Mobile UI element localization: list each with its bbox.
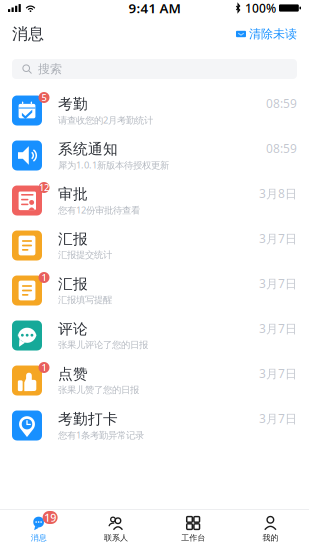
staticText: 08:59 xyxy=(266,95,297,111)
button[interactable]: 1 xyxy=(0,358,309,403)
button[interactable]: 12 xyxy=(0,178,309,223)
staticText: 9:41 AM xyxy=(128,0,180,17)
staticText: 请查收您的2月考勤统计 xyxy=(58,114,153,126)
staticText: 张果儿赞了您的日报 xyxy=(58,384,139,396)
button[interactable]: 5 xyxy=(0,88,309,133)
button[interactable]: 评论 xyxy=(0,313,309,358)
staticText: 汇报提交统计 xyxy=(58,249,112,261)
staticText: 3月7日 xyxy=(259,365,297,381)
staticText: 汇报 xyxy=(58,230,88,248)
staticText: 我的 xyxy=(262,533,278,543)
button[interactable]: 工作台 xyxy=(154,510,232,550)
staticText: 100% xyxy=(245,0,276,16)
button[interactable]: 汇报 xyxy=(0,223,309,268)
staticText: 消息 xyxy=(31,533,47,543)
staticText: 3月8日 xyxy=(259,185,297,201)
staticText: 工作台 xyxy=(181,533,205,543)
staticText: 3月7日 xyxy=(259,275,297,291)
button[interactable]: 联系人 xyxy=(77,510,154,550)
button[interactable]: 19 xyxy=(0,510,77,550)
staticText: 评论 xyxy=(58,320,88,338)
staticText: 审批 xyxy=(58,185,88,203)
staticText: 犀为1.0.1新版本待授权更新 xyxy=(58,159,169,171)
staticText: 考勤打卡 xyxy=(58,410,118,428)
staticText: 考勤 xyxy=(58,95,88,113)
button[interactable]: 1 xyxy=(0,268,309,313)
staticText: 联系人 xyxy=(104,533,128,543)
staticText: 点赞 xyxy=(58,365,88,383)
staticText: 1 xyxy=(41,361,46,374)
staticText: 汇报 xyxy=(58,275,88,293)
button[interactable]: 考勤打卡 xyxy=(0,403,309,448)
staticText: 1 xyxy=(41,271,46,284)
button[interactable]: 清除未读 xyxy=(236,27,297,41)
staticText: 3月7日 xyxy=(259,230,297,246)
staticText: 3月7日 xyxy=(259,410,297,426)
staticText: 消息 xyxy=(12,24,44,44)
staticText: 12 xyxy=(39,181,49,194)
staticText: 5 xyxy=(41,91,46,104)
staticText: 3月7日 xyxy=(259,320,297,336)
button[interactable]: 系统通知 xyxy=(0,133,309,178)
staticText: 您有1条考勤异常记录 xyxy=(58,429,144,441)
staticText: 汇报填写提醒 xyxy=(58,294,112,306)
staticText: 19 xyxy=(44,510,56,525)
staticText: 系统通知 xyxy=(58,140,118,158)
staticText: 08:59 xyxy=(266,140,297,156)
staticText: 张果儿评论了您的日报 xyxy=(58,339,148,351)
staticText: 清除未读 xyxy=(249,27,297,41)
staticText: 搜索 xyxy=(38,62,62,76)
staticText: 您有12份审批待查看 xyxy=(58,204,140,216)
button[interactable]: 我的 xyxy=(232,510,309,550)
